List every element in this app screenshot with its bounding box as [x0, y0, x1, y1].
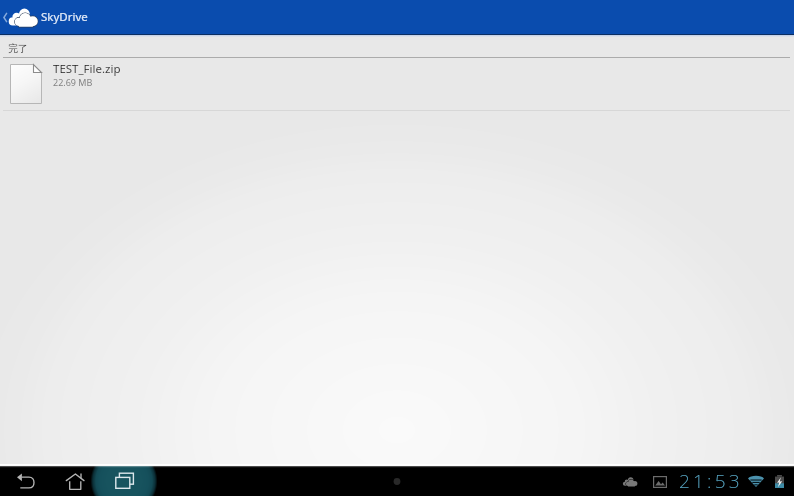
button[interactable]: Home: [53, 466, 97, 496]
staticText: TEST_File.zip: [53, 61, 121, 77]
button[interactable]: [0, 0, 794, 34]
staticText: 完了: [8, 42, 28, 55]
button[interactable]: 完了: [0, 37, 794, 58]
staticText: 22.69 MB: [53, 76, 93, 88]
button[interactable]: TEST_File.zip: [0, 58, 794, 110]
staticText: 21:53: [679, 468, 743, 494]
button[interactable]: Recent apps: [102, 466, 148, 496]
button[interactable]: Back: [5, 466, 49, 496]
staticText: SkyDrive: [41, 9, 88, 25]
